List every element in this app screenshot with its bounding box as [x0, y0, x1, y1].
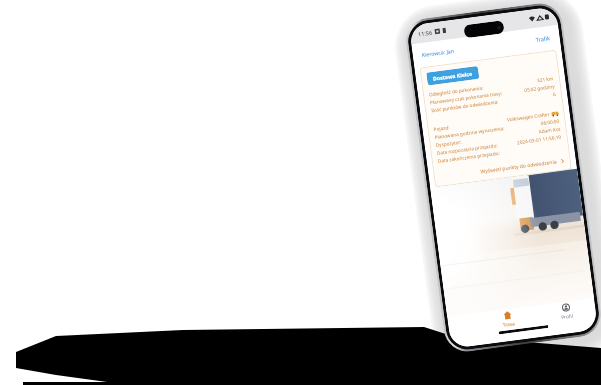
staticText: Adam Kot	[538, 126, 561, 134]
staticText: Trafik	[535, 34, 551, 43]
staticText: Profil	[561, 313, 574, 321]
button[interactable]: Trafik	[535, 34, 551, 43]
button[interactable]: Profil	[536, 300, 596, 324]
staticText: Dostawa Kielce	[432, 70, 473, 82]
button[interactable]: Wyświetl punkty do odwiedzenia	[439, 157, 565, 181]
staticText: 2024-03-01 11:56:19	[517, 134, 562, 145]
staticText: Planowana godzina wyruszenia:	[434, 125, 505, 140]
staticText: Ilość punktów do odwiedzenia:	[431, 98, 499, 113]
staticText: Wyświetl punkty do odwiedzenia	[480, 158, 557, 175]
staticText: Volkswagen Crafter	[507, 111, 550, 123]
staticText: Odległość do pokonania:	[429, 84, 484, 97]
staticText: Data zakończenia przejazdu:	[437, 150, 501, 164]
staticText: Data rozpoczęcia przejazdu:	[436, 142, 499, 156]
staticText: Trasa	[502, 320, 515, 329]
staticText: Planowany czas pokonania trasy:	[430, 90, 503, 105]
button[interactable]: Dostawa Kielce	[426, 66, 479, 86]
staticText: Pojazd:	[433, 124, 450, 132]
staticText: 06:00:00	[540, 118, 560, 126]
staticText: Kierowca: Jan	[421, 47, 455, 58]
staticText: 6	[553, 91, 556, 97]
staticText: Dyspozytor:	[435, 139, 463, 148]
button[interactable]: Trasa	[477, 307, 538, 332]
staticText: 321 km	[537, 75, 554, 83]
staticText: 11:56	[418, 28, 433, 37]
staticText: 05:02 godziny	[524, 83, 555, 93]
